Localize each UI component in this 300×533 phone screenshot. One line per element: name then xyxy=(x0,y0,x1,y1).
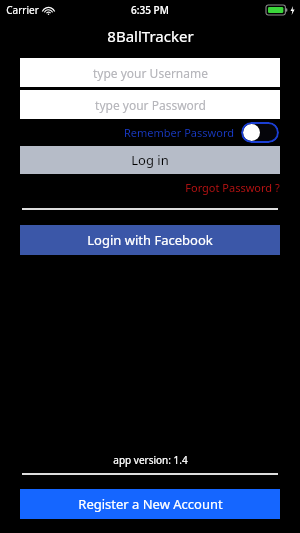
button[interactable]: Remember Password toggle xyxy=(241,122,279,143)
staticText: 8BallTracker xyxy=(107,26,194,46)
staticText: Login with Facebook xyxy=(87,231,213,249)
staticText: Remember Password xyxy=(124,125,234,140)
staticText: Carrier xyxy=(6,3,39,17)
button[interactable]: Forgot Password ? xyxy=(185,180,280,195)
button[interactable]: Login with Facebook xyxy=(20,225,280,255)
button[interactable]: type your Username xyxy=(20,58,280,87)
button[interactable]: Register a New Account xyxy=(20,489,280,519)
staticText: 6:35 PM xyxy=(131,3,169,17)
staticText: Log in xyxy=(131,151,169,169)
staticText: Forgot Password ? xyxy=(185,180,280,195)
button[interactable]: Log in xyxy=(20,146,280,174)
staticText: Register a New Account xyxy=(78,495,223,513)
button[interactable]: type your Password xyxy=(20,90,280,119)
button[interactable]: Remember Password xyxy=(124,122,279,143)
staticText: app version: 1.4 xyxy=(113,453,188,467)
staticText: type your Password xyxy=(95,97,206,113)
staticText: type your Username xyxy=(93,65,208,81)
